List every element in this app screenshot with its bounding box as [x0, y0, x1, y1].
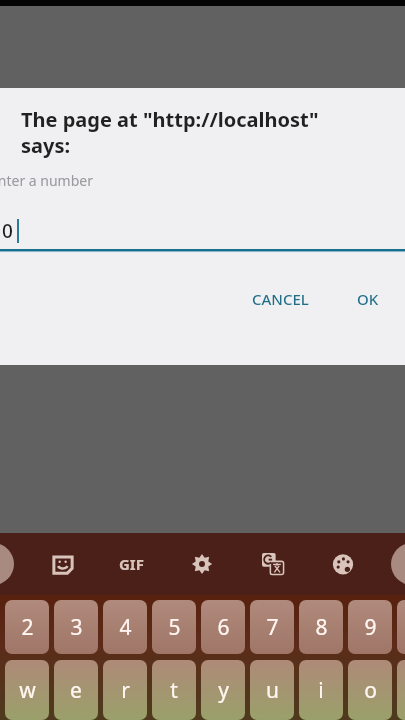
button[interactable]: Theme	[328, 533, 358, 595]
button[interactable]: GIF	[112, 533, 150, 595]
button[interactable]: 2	[5, 600, 49, 654]
button[interactable]	[397, 660, 405, 720]
staticText: Enter a number	[0, 171, 93, 190]
staticText: 4	[119, 613, 132, 642]
staticText: r	[121, 676, 130, 705]
button[interactable]: Stickers	[48, 533, 78, 595]
button[interactable]: Settings	[187, 533, 217, 595]
staticText: GIF	[119, 554, 144, 574]
button[interactable]: 6	[201, 600, 245, 654]
button[interactable]: o	[348, 660, 392, 720]
staticText: u	[266, 676, 279, 705]
button[interactable]: 9	[348, 600, 392, 654]
staticText: OK	[357, 289, 379, 309]
button[interactable]: w	[5, 660, 49, 720]
staticText: e	[70, 676, 82, 705]
staticText: i	[318, 676, 324, 705]
button[interactable]: Translate	[258, 533, 288, 595]
button[interactable]: e	[54, 660, 98, 720]
button[interactable]	[397, 600, 405, 654]
button[interactable]: r	[103, 660, 147, 720]
staticText: 6	[217, 613, 230, 642]
staticText: w	[19, 676, 36, 705]
staticText: 3	[70, 613, 83, 642]
staticText: 7	[266, 613, 279, 642]
staticText: y	[218, 676, 229, 705]
staticText: 2	[21, 613, 34, 642]
button[interactable]: CANCEL	[240, 281, 321, 317]
button[interactable]: 7	[250, 600, 294, 654]
staticText: The page at "http://localhost" says:	[21, 106, 319, 159]
button[interactable]: 4	[103, 600, 147, 654]
button[interactable]: OK	[345, 281, 391, 317]
staticText: 5	[168, 613, 181, 642]
staticText: o	[364, 676, 377, 705]
button[interactable]: 0	[0, 209, 405, 253]
button[interactable]: i	[299, 660, 343, 720]
staticText: 0	[2, 218, 13, 244]
button[interactable]: u	[250, 660, 294, 720]
staticText: CANCEL	[252, 289, 309, 309]
button[interactable]: 8	[299, 600, 343, 654]
button[interactable]: y	[201, 660, 245, 720]
button[interactable]: 3	[54, 600, 98, 654]
staticText: 8	[315, 613, 328, 642]
button[interactable]: t	[152, 660, 196, 720]
button[interactable]: 5	[152, 600, 196, 654]
staticText: t	[170, 676, 178, 705]
staticText: 9	[364, 613, 377, 642]
